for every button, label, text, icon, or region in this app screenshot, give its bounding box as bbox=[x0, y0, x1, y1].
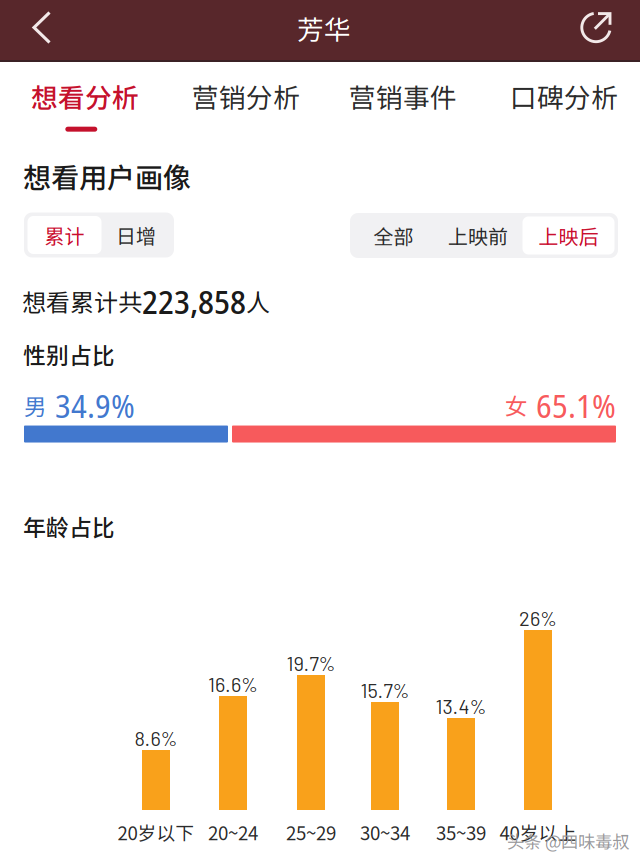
staticText: 营销事件 bbox=[349, 77, 457, 115]
button[interactable]: 营销分析 bbox=[168, 62, 324, 138]
staticText: 65.1% bbox=[536, 382, 616, 428]
staticText: 20~24 bbox=[208, 818, 258, 845]
staticText: 13.4% bbox=[435, 694, 486, 718]
staticText: 人 bbox=[246, 284, 270, 318]
staticText: 累计 bbox=[44, 220, 84, 249]
staticText: 日增 bbox=[116, 220, 156, 249]
staticText: 15.7% bbox=[360, 678, 409, 702]
staticText: 25~29 bbox=[286, 818, 336, 845]
staticText: 40岁以上 bbox=[499, 818, 576, 845]
staticText: 35~39 bbox=[436, 818, 486, 845]
staticText: 全部 bbox=[373, 221, 413, 250]
staticText: 16.6% bbox=[208, 672, 258, 696]
staticText: 30~34 bbox=[360, 818, 410, 845]
button[interactable]: 想看分析 bbox=[7, 62, 163, 138]
staticText: 想看累计共 bbox=[22, 284, 142, 318]
staticText: 上映后 bbox=[538, 221, 598, 250]
staticText: 上映前 bbox=[448, 221, 508, 250]
button[interactable]: 全部 bbox=[353, 216, 433, 254]
button[interactable]: 营销事件 bbox=[325, 62, 481, 138]
staticText: 营销分析 bbox=[192, 77, 300, 115]
staticText: 想看用户画像 bbox=[23, 156, 191, 196]
button[interactable]: 上映后 bbox=[522, 216, 614, 254]
staticText: 男 bbox=[24, 389, 47, 421]
button[interactable]: Share bbox=[566, 0, 630, 59]
staticText: 8.6% bbox=[134, 726, 177, 750]
staticText: 26% bbox=[519, 606, 557, 630]
staticText: 口碑分析 bbox=[510, 77, 618, 115]
staticText: 年龄占比 bbox=[23, 510, 115, 542]
staticText: 性别占比 bbox=[23, 338, 115, 370]
button[interactable]: 上映前 bbox=[433, 216, 522, 254]
staticText: 芳华 bbox=[297, 9, 351, 47]
staticText: 20岁以下 bbox=[117, 818, 194, 845]
button[interactable]: 口碑分析 bbox=[486, 62, 640, 138]
staticText: 女 bbox=[505, 389, 528, 421]
staticText: 19.7% bbox=[286, 651, 335, 675]
button[interactable]: 累计 bbox=[27, 216, 101, 254]
staticText: 想看分析 bbox=[31, 77, 139, 115]
staticText: 34.9% bbox=[55, 382, 135, 428]
button[interactable]: 日增 bbox=[101, 216, 170, 254]
staticText: 头条 @四味毒叔 bbox=[507, 828, 629, 854]
button[interactable]: Back bbox=[10, 0, 74, 58]
staticText: 223,858 bbox=[142, 278, 246, 324]
